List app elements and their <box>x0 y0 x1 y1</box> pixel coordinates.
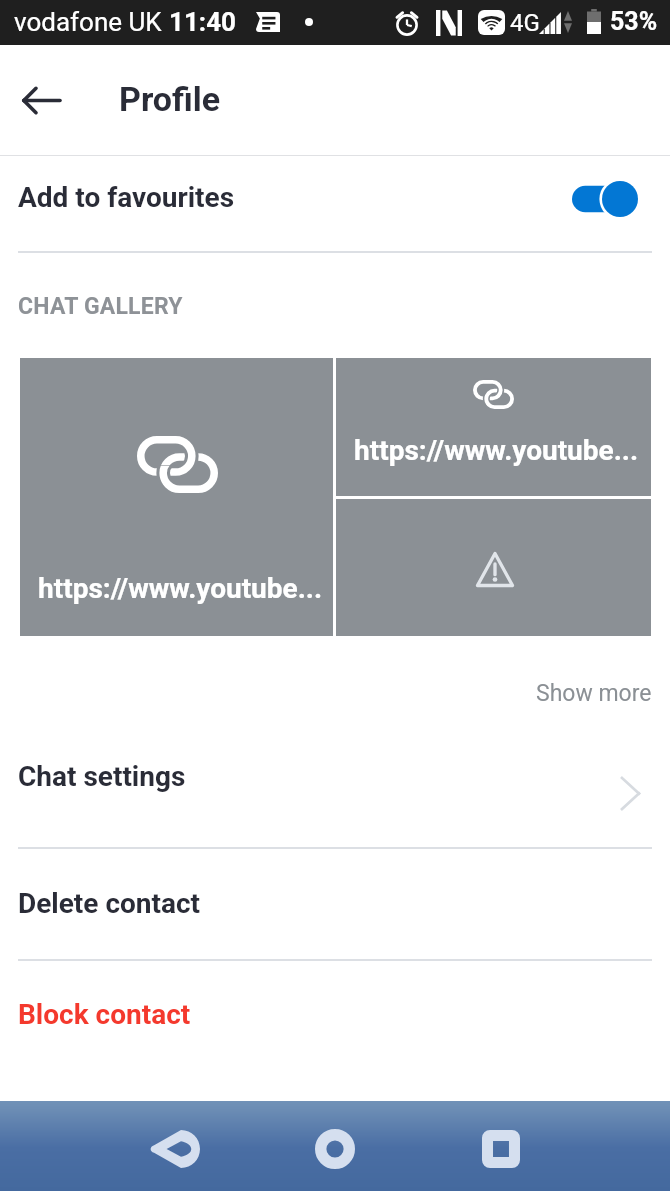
button[interactable]: Back <box>99 1104 249 1191</box>
button[interactable]: Block contact <box>0 959 670 1069</box>
staticText: Delete contact <box>18 887 201 920</box>
button[interactable]: https://www.youtube... <box>336 358 651 496</box>
staticText: https://www.youtube... <box>354 434 639 467</box>
staticText: 11:40 <box>169 7 236 37</box>
staticText: vodafone UK <box>14 7 162 37</box>
button[interactable]: https://www.youtube... <box>20 358 333 636</box>
button[interactable]: Show more <box>512 666 670 721</box>
button[interactable]: Recent apps <box>426 1104 576 1191</box>
button[interactable]: Delete contact <box>0 847 670 959</box>
button[interactable]: Home <box>260 1104 410 1191</box>
staticText: Profile <box>119 79 221 119</box>
staticText: 4G <box>510 9 540 37</box>
staticText: Chat settings <box>18 760 186 793</box>
staticText: 53% <box>610 7 658 36</box>
staticText: https://www.youtube... <box>38 572 323 605</box>
staticText: Block contact <box>18 998 191 1031</box>
staticText: Show more <box>536 680 652 707</box>
staticText: Add to favourites <box>18 181 235 214</box>
staticText: CHAT GALLERY <box>18 293 183 320</box>
button[interactable]: Back <box>1 60 81 140</box>
button[interactable]: Add to favourites <box>0 156 670 238</box>
button[interactable] <box>336 499 651 636</box>
button[interactable]: Chat settings <box>0 706 670 847</box>
